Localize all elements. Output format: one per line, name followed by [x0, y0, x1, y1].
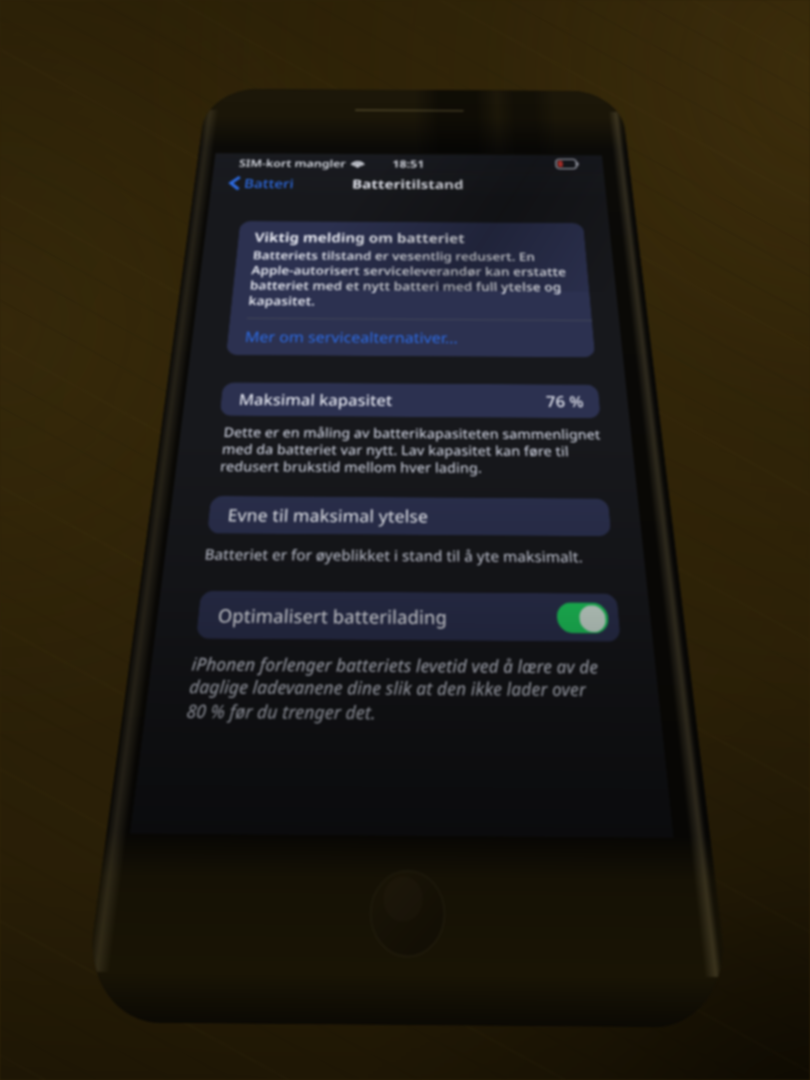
staticText: SIM-kort mangler [238, 156, 347, 170]
button[interactable]: Optimalisert batterilading, på [556, 602, 610, 633]
button[interactable]: Optimalisert batterilading [196, 591, 621, 642]
staticText: Viktig melding om batteriet [254, 228, 466, 247]
staticText: Dette er en måling av batterikapasiteten… [219, 422, 605, 477]
staticText: iPhonen forlenger batteriets levetid ved… [185, 651, 604, 727]
staticText: 18:51 [392, 157, 425, 170]
staticText: Batteriets tilstand er vesentlig reduser… [248, 247, 570, 311]
staticText: Maksimal kapasitet [238, 389, 393, 410]
button[interactable]: Mer om servicealternativer... [226, 319, 595, 357]
staticText: Mer om servicealternativer... [244, 327, 459, 347]
button[interactable]: Evne til maksimal ytelse [207, 496, 611, 536]
staticText: Evne til maksimal ytelse [227, 503, 428, 528]
button[interactable]: Maksimal kapasitet [219, 382, 601, 418]
staticText: 76 % [545, 391, 585, 411]
staticText: Optimalisert batterilading [217, 603, 448, 630]
staticText: Batteriet er for øyeblikket i stand til … [204, 543, 583, 566]
staticText: Batteri [243, 174, 295, 192]
staticText: Batteritilstand [352, 175, 464, 193]
button[interactable]: Batteri [211, 174, 303, 192]
